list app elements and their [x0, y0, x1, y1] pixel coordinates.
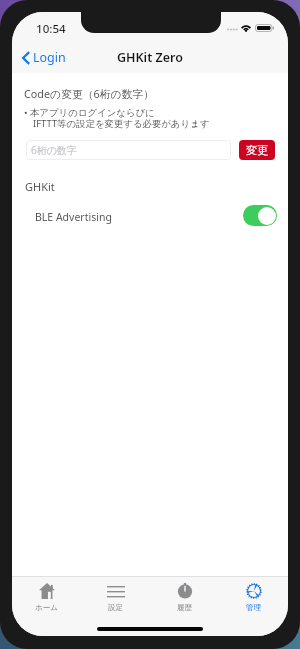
staticText: 履歴: [177, 603, 192, 612]
button[interactable]: ホーム: [12, 577, 81, 617]
button[interactable]: 設定: [81, 577, 150, 617]
staticText: BLE Advertising: [35, 210, 112, 224]
staticText: GHKit: [25, 179, 55, 194]
button[interactable]: Login: [22, 49, 66, 66]
button[interactable]: BLE Advertising toggle: [243, 205, 277, 226]
staticText: Login: [33, 49, 66, 66]
staticText: 設定: [108, 603, 123, 612]
button[interactable]: 6桁の数字: [26, 140, 231, 160]
staticText: IFTTT等の設定を変更する必要があります: [33, 117, 210, 130]
staticText: GHKit Zero: [117, 49, 183, 66]
button[interactable]: 履歴: [150, 577, 219, 617]
staticText: 管理: [246, 603, 261, 612]
staticText: • 本アプリのログインならびに: [24, 106, 155, 119]
staticText: ホーム: [35, 603, 58, 612]
button[interactable]: 管理: [219, 577, 288, 617]
button[interactable]: 変更: [239, 140, 275, 160]
staticText: Codeの変更（6桁の数字）: [24, 86, 154, 101]
staticText: 変更: [246, 143, 268, 157]
staticText: 10:54: [36, 21, 66, 37]
staticText: 6桁の数字: [31, 143, 77, 157]
